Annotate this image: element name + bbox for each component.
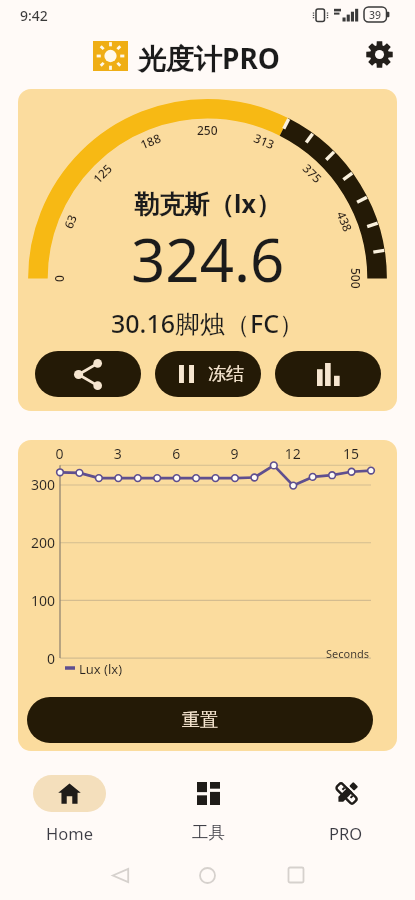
- button[interactable]: Back: [94, 858, 146, 892]
- staticText: 光度计PRO: [138, 39, 280, 77]
- staticText: 30.16脚烛（FC）: [111, 306, 305, 340]
- staticText: 324.6: [131, 218, 285, 300]
- button[interactable]: 重置: [27, 697, 373, 743]
- staticText: 39: [369, 8, 382, 22]
- button[interactable]: Share: [35, 351, 141, 397]
- staticText: 冻结: [208, 363, 244, 386]
- staticText: 工具: [192, 822, 225, 843]
- button[interactable]: 冻结: [155, 351, 261, 397]
- button[interactable]: PRO: [277, 775, 415, 845]
- staticText: 重置: [182, 709, 218, 732]
- staticText: 勒克斯（lx）: [134, 186, 281, 220]
- button[interactable]: Home: [0, 775, 139, 845]
- staticText: 9:42: [20, 6, 48, 25]
- button[interactable]: Recents: [270, 858, 322, 892]
- button[interactable]: 工具: [139, 775, 277, 845]
- staticText: Home: [46, 822, 93, 844]
- button[interactable]: Statistics: [275, 351, 381, 397]
- staticText: PRO: [329, 822, 363, 844]
- button[interactable]: Home: [181, 858, 233, 892]
- button[interactable]: Settings: [357, 32, 401, 76]
